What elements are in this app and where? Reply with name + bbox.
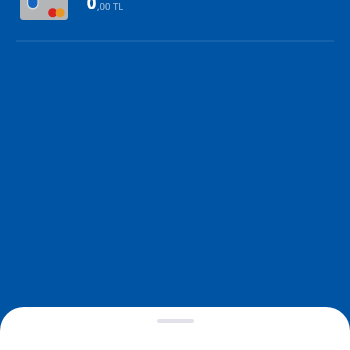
staticText: ,00 TL — [97, 0, 124, 13]
button[interactable]: Account 0,00 TL — [0, 0, 350, 20]
other: Drag handle — [157, 319, 194, 323]
staticText: 0 — [87, 0, 97, 14]
button[interactable]: Drag handle — [0, 307, 350, 350]
